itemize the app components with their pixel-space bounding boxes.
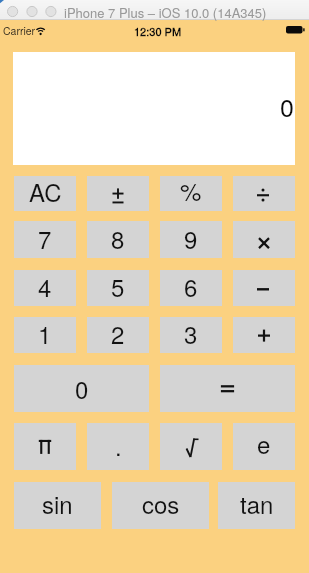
- button[interactable]: 3: [160, 317, 222, 353]
- staticText: 1: [38, 316, 52, 350]
- staticText: 7: [38, 221, 52, 255]
- staticText: .: [115, 428, 122, 462]
- staticText: Carrier: [3, 23, 36, 38]
- button[interactable]: sin: [14, 482, 101, 529]
- button[interactable]: [233, 221, 295, 258]
- staticText: cos: [142, 486, 180, 520]
- button[interactable]: 5: [87, 270, 149, 306]
- staticText: AC: [29, 174, 62, 208]
- staticText: %: [180, 173, 202, 207]
- button[interactable]: 4: [14, 270, 76, 306]
- button[interactable]: AC: [14, 176, 76, 211]
- button[interactable]: [87, 176, 149, 211]
- staticText: iPhone 7 Plus – iOS 10.0 (14A345): [64, 3, 267, 22]
- button[interactable]: 9: [160, 221, 222, 258]
- button[interactable]: [233, 270, 295, 306]
- staticText: 0: [75, 371, 89, 405]
- staticText: 4: [38, 269, 52, 303]
- button[interactable]: 0: [14, 365, 149, 412]
- button[interactable]: e: [233, 423, 295, 470]
- button[interactable]: %: [160, 176, 222, 211]
- staticText: 8: [111, 221, 125, 255]
- staticText: 5: [111, 269, 125, 303]
- button[interactable]: 6: [160, 270, 222, 306]
- button[interactable]: [160, 423, 222, 470]
- staticText: 6: [184, 269, 198, 303]
- button[interactable]: 7: [14, 221, 76, 258]
- button[interactable]: [14, 423, 76, 470]
- button[interactable]: 2: [87, 317, 149, 353]
- staticText: 0: [280, 88, 294, 124]
- staticText: e: [257, 426, 271, 460]
- button[interactable]: 8: [87, 221, 149, 258]
- button[interactable]: tan: [218, 482, 295, 529]
- button[interactable]: [233, 176, 295, 211]
- staticText: 3: [184, 316, 198, 350]
- staticText: tan: [240, 486, 274, 520]
- staticText: 2: [111, 316, 125, 350]
- button[interactable]: cos: [112, 482, 209, 529]
- staticText: sin: [42, 486, 73, 520]
- button[interactable]: 1: [14, 317, 76, 353]
- staticText: 9: [184, 221, 198, 255]
- button[interactable]: [233, 317, 295, 353]
- button[interactable]: .: [87, 423, 149, 470]
- staticText: 12:30 PM: [134, 23, 182, 39]
- button[interactable]: [160, 365, 295, 412]
